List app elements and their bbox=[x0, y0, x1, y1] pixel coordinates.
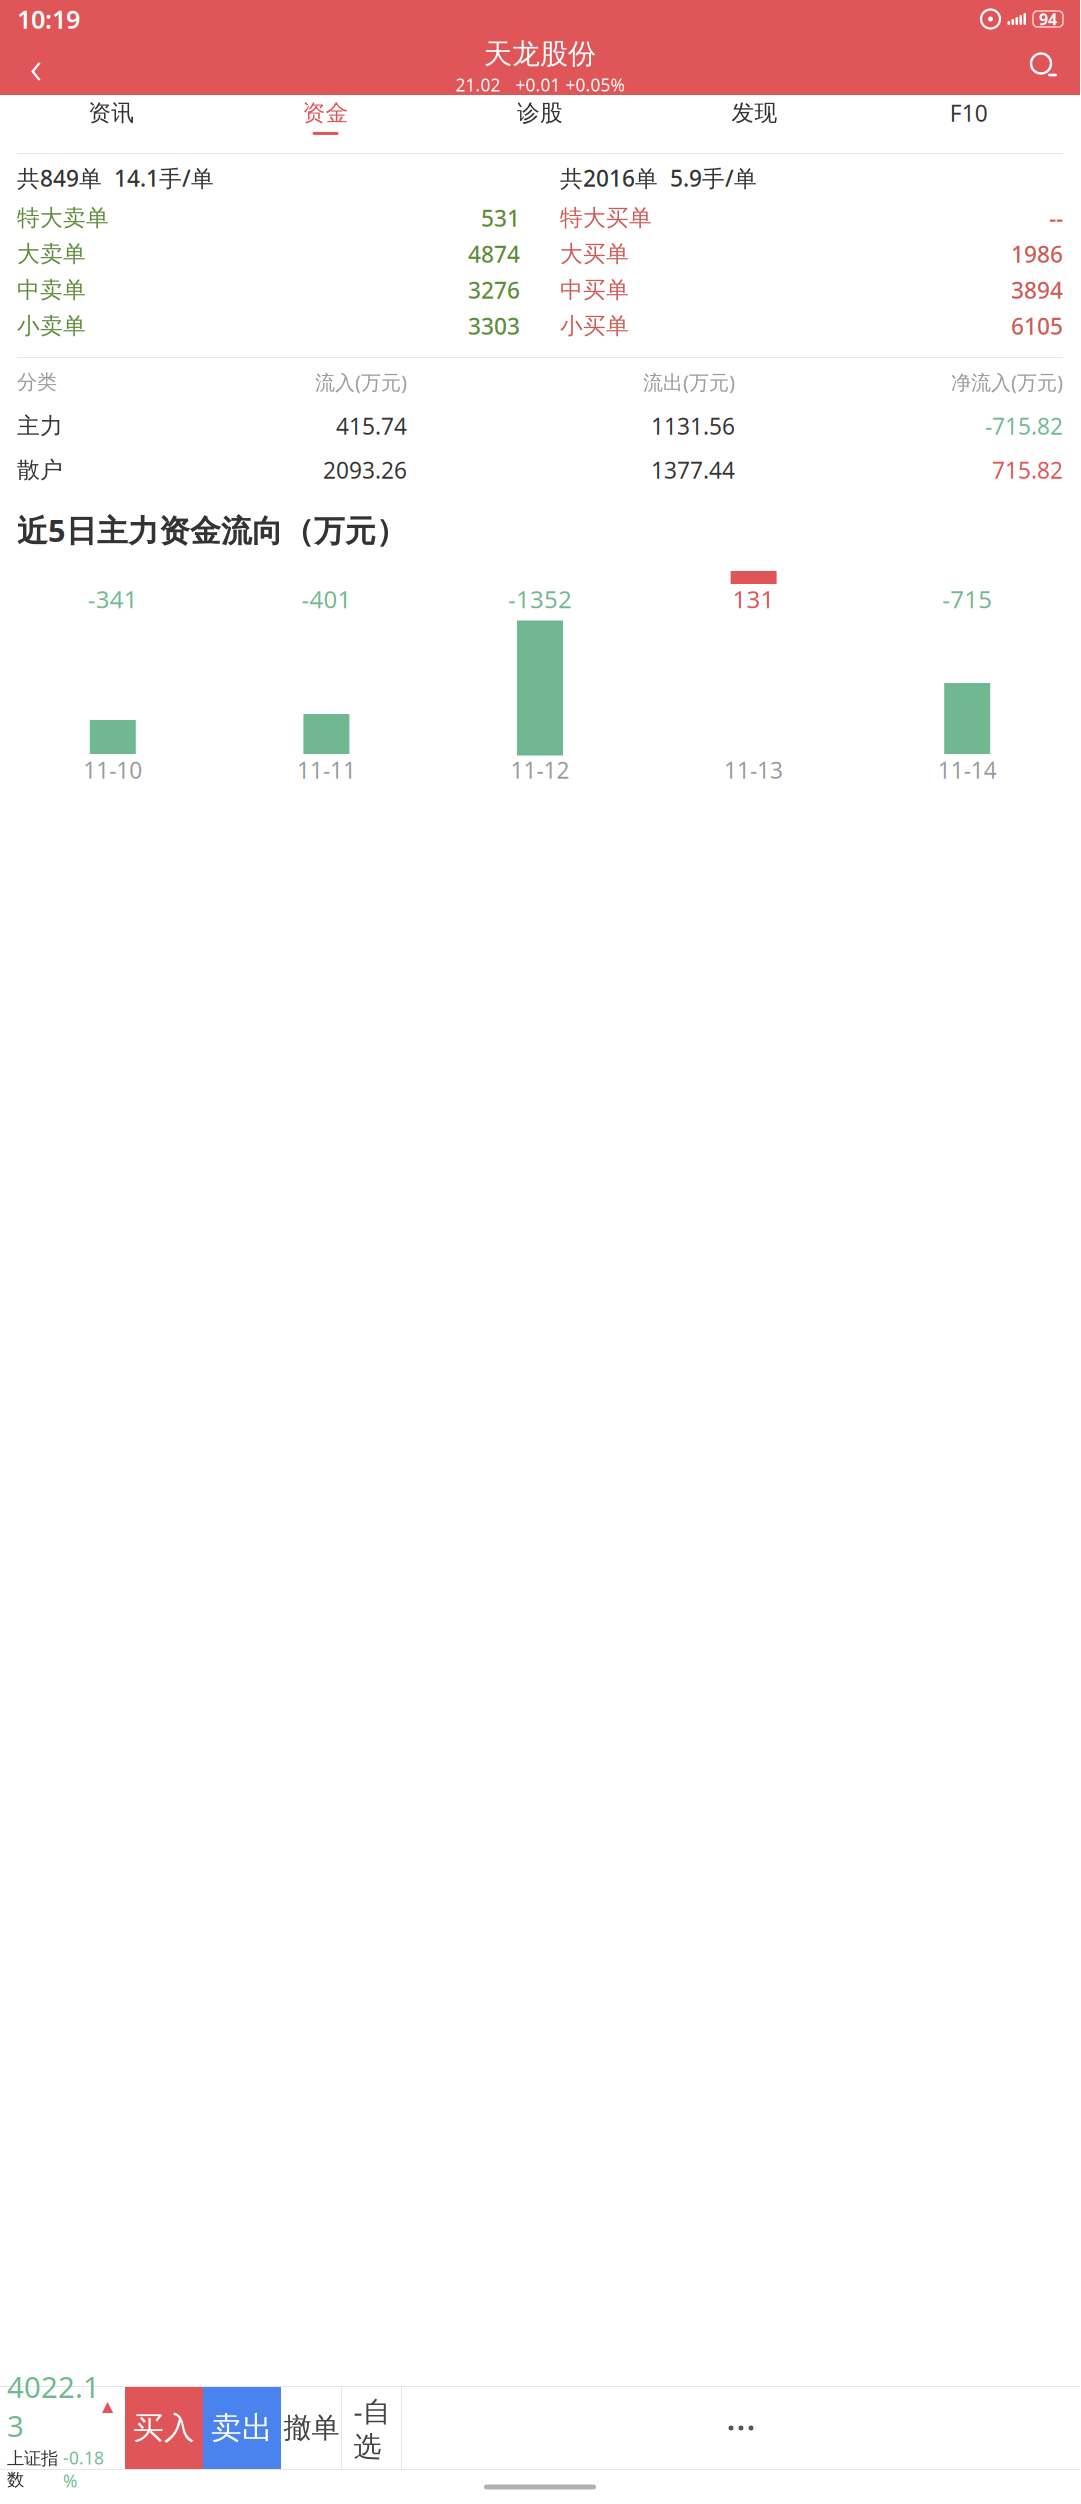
staticText: -自选 bbox=[353, 2392, 390, 2464]
staticText: 11-12 bbox=[510, 755, 569, 785]
staticText: -0.18% bbox=[63, 2446, 104, 2492]
button[interactable]: 买入 bbox=[125, 2387, 203, 2469]
staticText: -341 bbox=[88, 583, 138, 615]
staticText: 11-13 bbox=[724, 755, 783, 785]
staticText: 诊股 bbox=[517, 99, 563, 127]
staticText: 撤单 bbox=[283, 2411, 339, 2445]
staticText: 主力 bbox=[17, 412, 63, 440]
staticText: 小买单 bbox=[560, 312, 629, 340]
staticText: 4022.13 bbox=[7, 2367, 100, 2445]
staticText: 共849单 14.1手/单 bbox=[17, 163, 214, 193]
button[interactable]: More bbox=[402, 2387, 1080, 2469]
staticText: 21.02 +0.01 +0.05% bbox=[455, 73, 624, 96]
staticText: 531 bbox=[481, 203, 520, 233]
staticText: 天龙股份 bbox=[484, 37, 596, 71]
staticText: 715.82 bbox=[992, 455, 1063, 485]
button[interactable]: -自选 bbox=[342, 2387, 402, 2469]
staticText: 分类 bbox=[17, 370, 57, 394]
staticText: 买入 bbox=[133, 2409, 195, 2447]
staticText: 卖出 bbox=[211, 2409, 273, 2447]
button[interactable]: 资金 bbox=[218, 95, 433, 139]
staticText: 3276 bbox=[468, 275, 520, 305]
button[interactable]: 卖出 bbox=[203, 2387, 281, 2469]
button[interactable]: 撤单 bbox=[281, 2387, 342, 2469]
button[interactable]: 资讯 bbox=[4, 95, 218, 139]
staticText: 流入(万元) bbox=[315, 369, 407, 395]
staticText: 资讯 bbox=[88, 99, 134, 127]
staticText: 流出(万元) bbox=[643, 369, 735, 395]
staticText: 3303 bbox=[468, 311, 520, 341]
staticText: 净流入(万元) bbox=[951, 369, 1063, 395]
staticText: ‹ bbox=[30, 36, 42, 97]
staticText: 10:19 bbox=[17, 2, 80, 36]
staticText: -- bbox=[1049, 203, 1063, 233]
staticText: 近5日主力资金流向（万元） bbox=[17, 510, 407, 550]
button[interactable]: Back bbox=[10, 40, 62, 92]
staticText: 特大买单 bbox=[560, 204, 652, 232]
staticText: 2093.26 bbox=[323, 455, 407, 485]
staticText: -401 bbox=[301, 583, 351, 615]
staticText: 1377.44 bbox=[651, 455, 735, 485]
staticText: 上证指数 bbox=[7, 2448, 58, 2490]
staticText: 大卖单 bbox=[17, 240, 86, 268]
staticText: 资金 bbox=[303, 99, 349, 127]
staticText: -1352 bbox=[508, 583, 572, 615]
staticText: 1986 bbox=[1011, 239, 1063, 269]
staticText: 3894 bbox=[1011, 275, 1063, 305]
staticText: 共2016单 5.9手/单 bbox=[560, 163, 757, 193]
button[interactable]: F10 bbox=[862, 95, 1076, 139]
staticText: 中买单 bbox=[560, 276, 629, 304]
staticText: 散户 bbox=[17, 456, 63, 484]
staticText: 发现 bbox=[731, 99, 777, 127]
staticText: 中卖单 bbox=[17, 276, 86, 304]
staticText: 大买单 bbox=[560, 240, 629, 268]
staticText: -715.82 bbox=[985, 411, 1063, 441]
staticText: 11-11 bbox=[297, 755, 356, 785]
button[interactable]: 诊股 bbox=[433, 95, 647, 139]
staticText: 11-10 bbox=[83, 755, 142, 785]
staticText: 特大卖单 bbox=[17, 204, 109, 232]
staticText: ▲ bbox=[102, 2398, 113, 2414]
staticText: 1131.56 bbox=[651, 411, 735, 441]
staticText: F10 bbox=[950, 98, 988, 128]
staticText: 131 bbox=[733, 583, 775, 615]
button[interactable]: 4022.13 bbox=[0, 2387, 125, 2469]
staticText: 415.74 bbox=[336, 411, 407, 441]
button[interactable]: Search bbox=[1018, 40, 1070, 92]
staticText: 11-14 bbox=[938, 755, 997, 785]
staticText: 小卖单 bbox=[17, 312, 86, 340]
staticText: 6105 bbox=[1011, 311, 1063, 341]
staticText: 94 bbox=[1039, 8, 1057, 30]
staticText: -715 bbox=[942, 583, 992, 615]
staticText: 4874 bbox=[468, 239, 520, 269]
button[interactable]: 发现 bbox=[647, 95, 862, 139]
